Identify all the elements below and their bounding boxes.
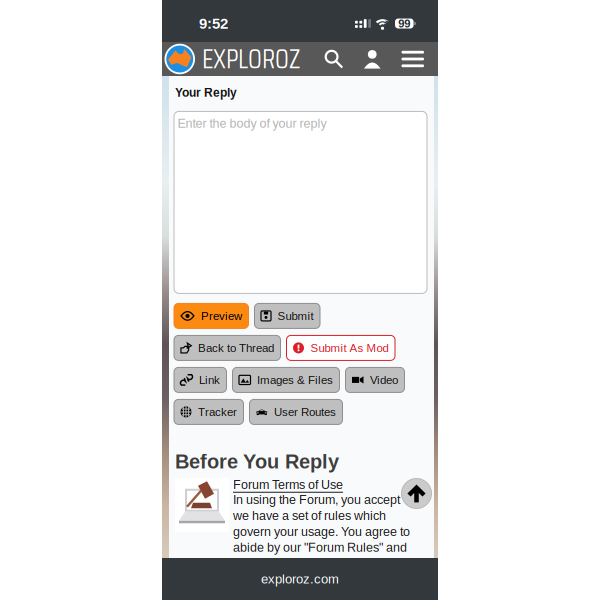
staticText: Tracker	[198, 405, 237, 418]
staticText: Enter the body of your reply	[177, 116, 326, 130]
button[interactable]: Video	[345, 367, 404, 392]
button[interactable]: Account	[363, 50, 381, 68]
staticText: User Routes	[274, 405, 336, 418]
button[interactable]: User Routes	[249, 399, 342, 424]
button[interactable]: Scroll to top	[401, 478, 432, 509]
button[interactable]: Images & Files	[232, 367, 339, 392]
staticText: Link	[199, 373, 220, 386]
staticText: Preview	[201, 309, 242, 322]
button[interactable]: Search	[324, 49, 343, 68]
staticText: Submit As Mod	[310, 341, 388, 354]
staticText: Your Reply	[175, 86, 237, 99]
button[interactable]: Submit As Mod	[286, 335, 395, 360]
staticText: exploroz.com	[261, 572, 339, 586]
staticText: Back to Thread	[198, 341, 274, 354]
staticText: 9:52	[199, 15, 228, 32]
button[interactable]: Menu	[401, 51, 424, 67]
staticText: Video	[370, 373, 398, 386]
button[interactable]: Preview	[174, 303, 248, 328]
button[interactable]: Forum Terms of Use	[233, 478, 343, 493]
button[interactable]: Tracker	[174, 399, 243, 424]
button[interactable]: Submit	[254, 303, 320, 328]
staticText: Submit	[277, 309, 313, 322]
button[interactable]: Link	[174, 367, 226, 392]
staticText: In using the Forum, you accept we have a…	[233, 493, 410, 570]
button[interactable]: Back to Thread	[174, 335, 280, 360]
staticText: Forum Terms of Use	[233, 478, 343, 492]
staticText: Before You Reply	[175, 450, 339, 473]
staticText: EXPLOROZ	[202, 38, 300, 80]
staticText: 99	[398, 17, 410, 30]
staticText: Images & Files	[257, 373, 333, 386]
